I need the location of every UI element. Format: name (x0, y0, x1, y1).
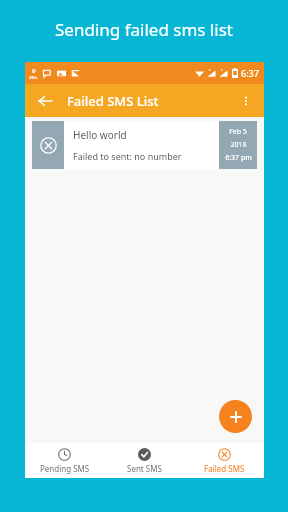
staticText: Hello world (73, 128, 127, 142)
staticText: Sending failed sms list (55, 18, 233, 41)
button[interactable]: Sent SMS (104, 443, 184, 478)
staticText: 6:37 (241, 67, 259, 79)
staticText: 6:37 pm (225, 153, 252, 163)
staticText: KB/s (29, 75, 38, 80)
button[interactable]: Hello world (32, 121, 257, 169)
button[interactable]: Add (219, 400, 252, 433)
staticText: Failed SMS (204, 463, 245, 474)
button[interactable]: Pending SMS (25, 443, 104, 478)
button[interactable]: Back (33, 89, 57, 113)
staticText: 2018 (230, 140, 247, 150)
staticText: Failed SMS List (67, 92, 159, 110)
staticText: Failed to sent: no number (73, 150, 182, 162)
staticText: Feb 5 (229, 127, 247, 137)
button[interactable]: More options (234, 89, 258, 113)
staticText: Pending SMS (40, 463, 90, 474)
staticText: Sent SMS (127, 463, 162, 474)
button[interactable]: Failed SMS (184, 443, 264, 478)
staticText: 0 (32, 67, 36, 75)
